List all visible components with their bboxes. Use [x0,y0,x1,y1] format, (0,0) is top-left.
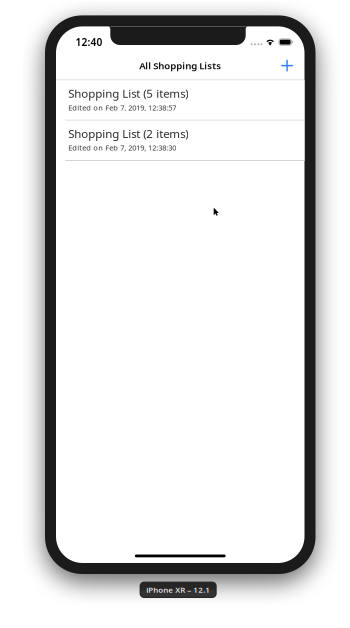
button[interactable]: Shopping List (2 items) [56,121,304,161]
staticText: 12:40 [76,35,103,49]
staticText: iPhone XR – 12.1 [146,584,210,595]
staticText: Edited on Feb 7, 2019, 12:38:57 [68,102,176,113]
staticText: Shopping List (5 items) [68,86,188,101]
staticText: Edited on Feb 7, 2019, 12:38:30 [68,143,176,153]
staticText: Shopping List (2 items) [68,126,188,141]
button[interactable]: Add shopping list [267,55,304,76]
staticText: All Shopping Lists [139,59,221,72]
button[interactable]: iPhone XR – 12.1 [140,582,217,598]
button[interactable]: Shopping List (5 items) [56,80,304,121]
